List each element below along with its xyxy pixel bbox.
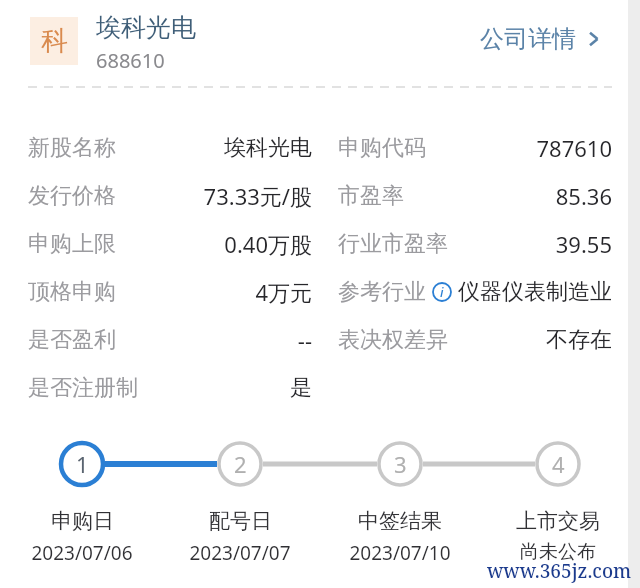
staticText: 仪器仪表制造业	[458, 278, 612, 306]
button[interactable]: 2	[219, 443, 261, 485]
staticText: 上市交易	[516, 508, 600, 534]
button[interactable]: 1	[61, 443, 103, 485]
staticText: 配号日	[209, 508, 272, 534]
staticText: 是否注册制	[28, 374, 138, 402]
staticText: 73.33元/股	[203, 181, 312, 211]
button[interactable]: 4	[537, 443, 579, 485]
staticText: 是否盈利	[28, 326, 116, 354]
staticText: 表决权差异	[338, 326, 448, 354]
staticText: 行业市盈率	[338, 230, 448, 258]
staticText: 2023/07/10	[349, 540, 451, 566]
staticText: 2	[234, 449, 247, 479]
staticText: 申购日	[51, 508, 114, 534]
staticText: 4万元	[255, 277, 312, 307]
staticText: 申购上限	[28, 230, 116, 258]
staticText: 申购代码	[338, 134, 426, 162]
staticText: 688610	[96, 47, 165, 74]
staticText: 参考行业	[338, 278, 426, 306]
staticText: 85.36	[555, 181, 612, 211]
staticText: 0.40万股	[224, 229, 312, 259]
staticText: 39.55	[555, 229, 612, 259]
staticText: 2023/07/06	[31, 540, 133, 566]
staticText: 787610	[536, 133, 612, 163]
staticText: 2023/07/07	[189, 540, 291, 566]
staticText: 科	[41, 24, 68, 58]
staticText: 4	[552, 449, 565, 479]
staticText: --	[297, 325, 312, 355]
staticText: 1	[76, 449, 89, 479]
staticText: 发行价格	[28, 182, 116, 210]
staticText: 顶格申购	[28, 278, 116, 306]
staticText: 不存在	[546, 326, 612, 354]
button[interactable]: 公司详情	[476, 20, 606, 58]
staticText: 市盈率	[338, 182, 404, 210]
button[interactable]: 3	[379, 443, 421, 485]
staticText: 3	[394, 449, 407, 479]
staticText: 埃科光电	[96, 12, 196, 43]
staticText: 公司详情	[480, 24, 576, 54]
staticText: 新股名称	[28, 134, 116, 162]
staticText: www.365jz.com	[487, 558, 632, 584]
staticText: 尚未公布	[520, 540, 596, 564]
staticText: 埃科光电	[224, 134, 312, 162]
staticText: 是	[290, 374, 312, 402]
staticText: 中签结果	[358, 508, 442, 534]
button[interactable]: 信息说明	[432, 282, 452, 302]
staticText: i	[440, 283, 444, 301]
